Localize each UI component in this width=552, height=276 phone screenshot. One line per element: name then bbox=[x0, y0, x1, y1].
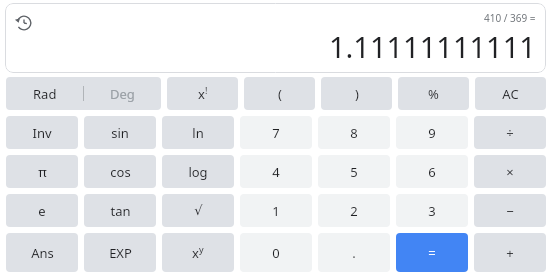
staticText: 410 / 369 = bbox=[484, 11, 536, 25]
button[interactable]: AC bbox=[475, 77, 546, 110]
staticText: tan bbox=[110, 202, 131, 220]
button[interactable]: 2 bbox=[318, 194, 390, 227]
staticText: Ans bbox=[31, 244, 54, 262]
button[interactable]: = bbox=[396, 233, 468, 272]
staticText: ! bbox=[205, 84, 208, 96]
staticText: π bbox=[38, 163, 47, 181]
button[interactable]: 1 bbox=[240, 194, 312, 227]
button[interactable]: Ans bbox=[6, 233, 78, 272]
staticText: − bbox=[506, 202, 514, 220]
button[interactable]: 8 bbox=[318, 116, 390, 149]
button[interactable]: × bbox=[474, 155, 546, 188]
button[interactable]: 0 bbox=[240, 233, 312, 272]
staticText: 8 bbox=[350, 124, 358, 142]
staticText: 1 bbox=[272, 202, 280, 220]
staticText: 1.11111111111 bbox=[329, 27, 536, 66]
staticText: AC bbox=[502, 85, 519, 103]
staticText: ( bbox=[278, 85, 282, 103]
staticText: 6 bbox=[428, 163, 436, 181]
button[interactable]: 6 bbox=[396, 155, 468, 188]
staticText: ln bbox=[192, 124, 204, 142]
staticText: 0 bbox=[272, 244, 280, 262]
button[interactable]: e bbox=[6, 194, 78, 227]
staticText: Inv bbox=[32, 124, 52, 142]
button[interactable]: Inv bbox=[6, 116, 78, 149]
staticText: × bbox=[506, 163, 514, 181]
button[interactable]: + bbox=[474, 233, 546, 272]
staticText: + bbox=[506, 244, 514, 262]
button[interactable]: π bbox=[6, 155, 78, 188]
button[interactable]: tan bbox=[84, 194, 156, 227]
button[interactable]: 9 bbox=[396, 116, 468, 149]
button[interactable]: . bbox=[318, 233, 390, 272]
staticText: x bbox=[198, 85, 205, 103]
staticText: log bbox=[188, 163, 208, 181]
staticText: = bbox=[428, 244, 436, 262]
button[interactable]: − bbox=[474, 194, 546, 227]
staticText: 9 bbox=[428, 124, 436, 142]
staticText: % bbox=[428, 85, 439, 103]
button[interactable]: EXP bbox=[84, 233, 156, 272]
button[interactable]: ( bbox=[244, 77, 315, 110]
button[interactable]: 5 bbox=[318, 155, 390, 188]
button[interactable]: cos bbox=[84, 155, 156, 188]
button[interactable]: log bbox=[162, 155, 234, 188]
staticText: x bbox=[192, 244, 199, 262]
button[interactable]: 4 bbox=[240, 155, 312, 188]
button[interactable]: ÷ bbox=[474, 116, 546, 149]
staticText: ÷ bbox=[506, 124, 514, 142]
button[interactable]: √ bbox=[162, 194, 234, 227]
staticText: √ bbox=[194, 203, 203, 218]
button[interactable]: sin bbox=[84, 116, 156, 149]
staticText: e bbox=[38, 202, 46, 220]
staticText: 3 bbox=[428, 202, 436, 220]
button[interactable]: ) bbox=[321, 77, 392, 110]
staticText: ) bbox=[355, 85, 359, 103]
staticText: . bbox=[352, 244, 356, 262]
staticText: Rad bbox=[33, 85, 57, 103]
button[interactable]: 3 bbox=[396, 194, 468, 227]
button[interactable]: History bbox=[13, 12, 35, 34]
button[interactable]: 7 bbox=[240, 116, 312, 149]
button[interactable]: ln bbox=[162, 116, 234, 149]
staticText: y bbox=[199, 243, 204, 255]
staticText: 4 bbox=[272, 163, 280, 181]
staticText: 2 bbox=[350, 202, 358, 220]
staticText: cos bbox=[110, 163, 131, 181]
staticText: EXP bbox=[109, 244, 132, 262]
staticText: 5 bbox=[350, 163, 358, 181]
staticText: 7 bbox=[272, 124, 280, 142]
button[interactable]: % bbox=[398, 77, 469, 110]
button[interactable]: x bbox=[167, 77, 238, 110]
button[interactable]: x bbox=[162, 233, 234, 272]
staticText: Deg bbox=[110, 85, 135, 103]
staticText: sin bbox=[111, 124, 129, 142]
button[interactable]: Rad bbox=[6, 77, 161, 110]
